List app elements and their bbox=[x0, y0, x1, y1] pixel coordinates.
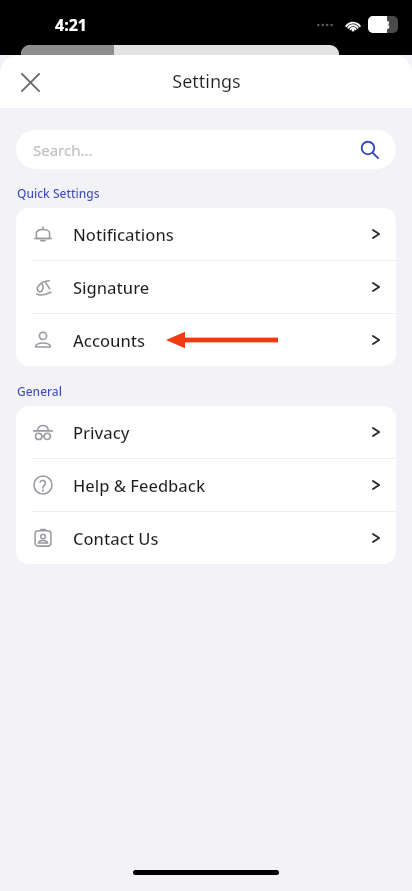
staticText: Settings bbox=[172, 69, 241, 94]
button[interactable]: Close bbox=[10, 62, 50, 102]
button[interactable]: Contact Us bbox=[16, 512, 396, 564]
staticText: Accounts bbox=[73, 329, 146, 351]
button[interactable]: Privacy bbox=[16, 406, 396, 458]
button[interactable]: Search... bbox=[16, 130, 396, 169]
staticText: Contact Us bbox=[73, 527, 159, 549]
staticText: Notifications bbox=[73, 223, 174, 245]
staticText: Search... bbox=[33, 140, 360, 160]
staticText: Signature bbox=[73, 276, 150, 298]
staticText: Help & Feedback bbox=[73, 474, 206, 496]
button[interactable]: Signature bbox=[16, 261, 396, 313]
staticText: Quick Settings bbox=[17, 185, 100, 201]
button[interactable]: Help & Feedback bbox=[16, 459, 396, 511]
staticText: 38 bbox=[377, 17, 390, 32]
button[interactable]: Notifications bbox=[16, 208, 396, 260]
staticText: 4:21 bbox=[55, 14, 87, 36]
staticText: General bbox=[17, 383, 62, 399]
staticText: Privacy bbox=[73, 421, 130, 443]
button[interactable]: Accounts bbox=[16, 314, 396, 366]
